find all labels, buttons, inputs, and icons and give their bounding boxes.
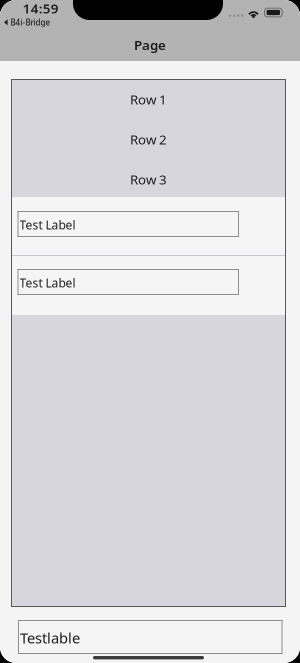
staticText: Test Label [19, 217, 75, 233]
button[interactable]: Testlable [18, 620, 282, 654]
staticText: Row 1 [130, 90, 167, 108]
staticText: Row 3 [130, 170, 167, 188]
staticText: 14:59 [23, 0, 59, 17]
staticText: Test Label [19, 275, 75, 291]
staticText: Testlable [20, 628, 80, 647]
staticText: Page [134, 36, 166, 54]
staticText: Row 2 [130, 130, 167, 148]
staticText: B4i-Bridge [10, 17, 50, 28]
button[interactable]: Test Label [17, 269, 239, 295]
button[interactable]: Test Label [17, 211, 239, 237]
